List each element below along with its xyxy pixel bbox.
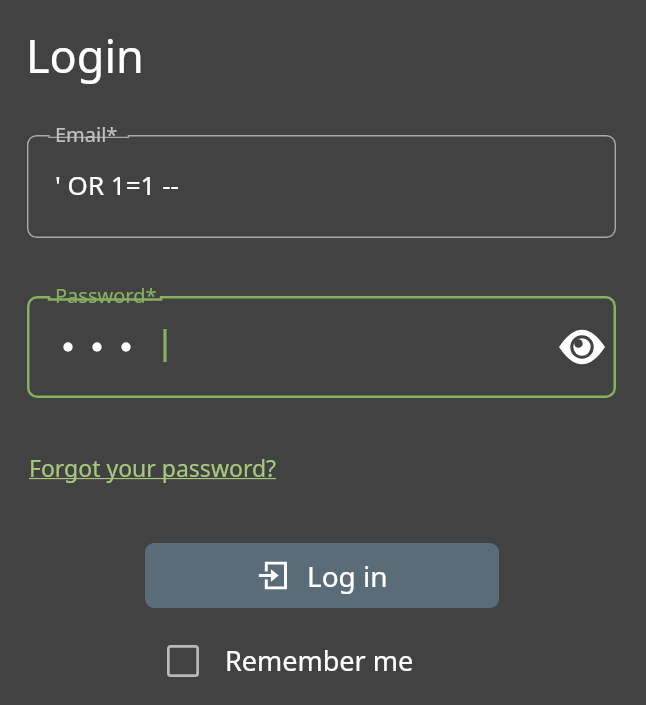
staticText: Password* [55, 282, 157, 309]
staticText: Forgot your password? [29, 452, 277, 483]
button[interactable]: Show password [556, 321, 608, 373]
staticText: Log in [307, 557, 388, 595]
button[interactable]: Remember me [160, 635, 421, 686]
button[interactable]: Forgot your password? [25, 448, 281, 487]
button[interactable]: Log in [145, 543, 499, 608]
staticText: Login [26, 25, 144, 86]
staticText: Email* [55, 121, 118, 148]
staticText: ' OR 1=1 -- [55, 167, 179, 202]
staticText: Remember me [225, 642, 414, 679]
